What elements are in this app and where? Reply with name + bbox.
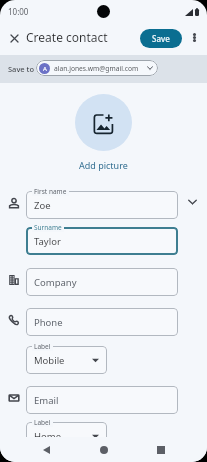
staticText: Email: [34, 394, 59, 407]
button[interactable]: Mobile: [26, 346, 107, 374]
staticText: Label: [34, 342, 51, 351]
staticText: Save: [152, 33, 170, 44]
staticText: Zoe: [34, 199, 51, 212]
button[interactable]: Add picture: [75, 158, 132, 172]
button[interactable]: Back: [33, 437, 59, 462]
button[interactable]: Close: [2, 26, 26, 50]
button[interactable]: Recent apps: [148, 437, 174, 462]
staticText: First name: [34, 187, 67, 196]
staticText: Home: [34, 430, 62, 443]
staticText: A: [43, 65, 47, 73]
staticText: Add picture: [79, 159, 128, 171]
button[interactable]: Email: [26, 386, 178, 414]
button[interactable]: Zoe: [26, 191, 178, 219]
staticText: Label: [34, 418, 51, 427]
staticText: Taylor: [34, 235, 61, 248]
button[interactable]: More options: [183, 26, 205, 48]
staticText: alan.jones.wm@gmail.com: [54, 64, 139, 73]
button[interactable]: Home: [26, 422, 107, 450]
staticText: Phone: [34, 316, 63, 329]
button[interactable]: Expand name fields: [183, 188, 202, 216]
staticText: Mobile: [34, 354, 65, 367]
button[interactable]: Taylor: [26, 227, 178, 255]
button[interactable]: Add picture: [75, 94, 132, 151]
button[interactable]: Company: [26, 268, 178, 296]
button[interactable]: Phone: [26, 308, 178, 336]
staticText: Save to: [8, 64, 35, 74]
staticText: 10:00: [8, 6, 29, 17]
staticText: Create contact: [26, 29, 108, 45]
staticText: Company: [34, 276, 77, 289]
button[interactable]: A: [36, 60, 158, 76]
button[interactable]: Home: [91, 437, 117, 462]
button[interactable]: Save: [140, 29, 182, 48]
staticText: Surname: [34, 223, 62, 232]
